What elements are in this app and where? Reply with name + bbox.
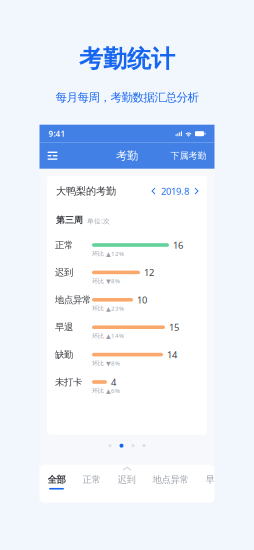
staticText: 环比 ▼8% (92, 359, 120, 367)
staticText: 环比 ▲23% (92, 304, 124, 313)
staticText: 考勤统计 (79, 44, 175, 74)
staticText: 大鸭梨的考勤 (56, 185, 116, 197)
button[interactable]: 下属考勤 (170, 143, 214, 169)
staticText: 早退 (205, 474, 223, 485)
staticText: 迟到 (55, 267, 73, 278)
button[interactable]: 全部 (47, 474, 65, 490)
staticText: 考勤 (116, 149, 138, 163)
staticText: 2019.8 (161, 185, 189, 197)
button[interactable]: 正常 (82, 474, 100, 490)
staticText: 环比 ▲12% (92, 249, 124, 258)
staticText: 缺勤 (55, 349, 73, 361)
staticText: 每月每周，考勤数据汇总分析 (55, 90, 198, 105)
button[interactable]: 选择月份 (152, 185, 198, 197)
staticText: 单位:次 (87, 216, 110, 225)
staticText: 环比 ▼8% (92, 277, 120, 285)
staticText: 未打卡 (55, 376, 82, 388)
button[interactable]: 地点异常 (152, 474, 188, 490)
staticText: 环比 ▲14% (92, 332, 124, 340)
staticText: 全部 (47, 474, 65, 485)
button[interactable]: 迟到 (117, 474, 135, 490)
staticText: 正常 (82, 474, 100, 485)
staticText: 环比 ▲6% (92, 386, 120, 395)
button[interactable]: 菜单 (39, 143, 71, 169)
staticText: 10 (137, 293, 147, 306)
staticText: 16 (173, 239, 183, 251)
staticText: 地点异常 (152, 474, 188, 485)
staticText: 正常 (55, 239, 73, 251)
staticText: 12 (144, 266, 154, 279)
staticText: 14 (167, 348, 177, 361)
staticText: 9:41 (48, 128, 65, 139)
staticText: 早退 (55, 321, 73, 333)
staticText: 下属考勤 (170, 150, 206, 161)
button[interactable]: 早退 (205, 474, 223, 490)
staticText: 15 (169, 321, 179, 334)
staticText: 4 (111, 376, 116, 388)
staticText: 第三周 (56, 214, 83, 225)
staticText: 地点异常 (55, 294, 91, 306)
staticText: 迟到 (117, 474, 135, 485)
